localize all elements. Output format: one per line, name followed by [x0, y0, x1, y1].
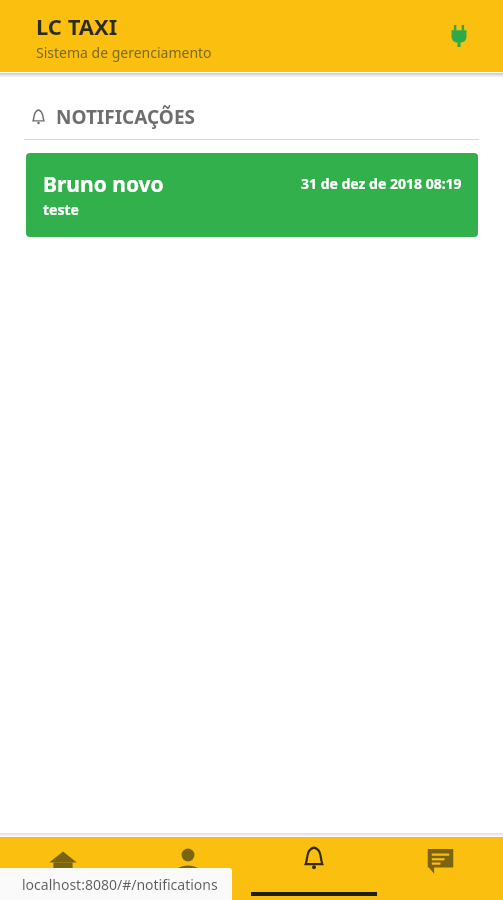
- button[interactable]: Perfil: [125, 837, 251, 900]
- staticText: LC TAXI: [36, 11, 118, 41]
- button[interactable]: Início: [0, 837, 125, 900]
- button[interactable]: Notificações: [251, 837, 377, 900]
- button[interactable]: Bruno novo: [26, 153, 478, 237]
- staticText: Sistema de gerenciamento: [36, 43, 212, 62]
- staticText: 31 de dez de 2018 08:19: [301, 174, 462, 193]
- button[interactable]: Mensagens: [377, 837, 503, 900]
- staticText: NOTIFICAÇÕES: [56, 104, 196, 130]
- staticText: localhost:8080/#/notifications: [22, 875, 218, 894]
- button[interactable]: Conectado: [441, 18, 477, 54]
- staticText: Bruno novo: [43, 170, 164, 199]
- staticText: teste: [43, 200, 79, 219]
